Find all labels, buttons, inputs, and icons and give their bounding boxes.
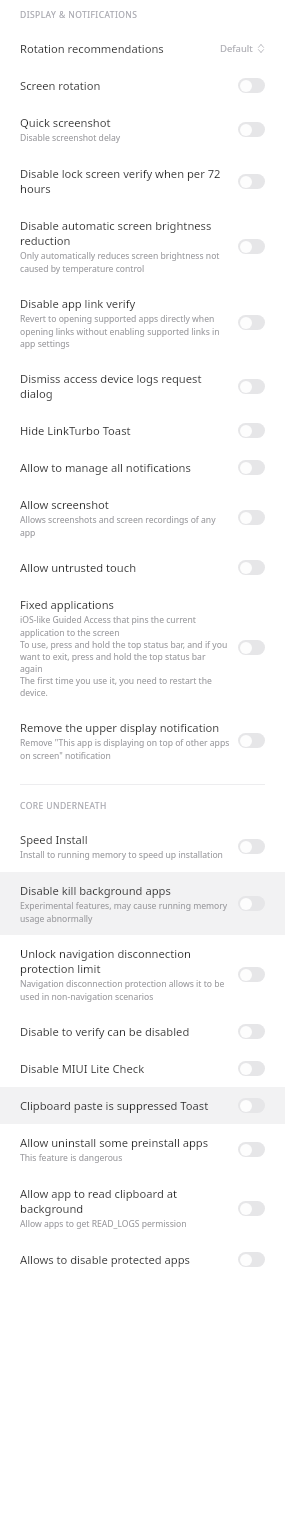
staticText: CORE UNDERNEATH — [20, 800, 107, 812]
button[interactable]: Screen rotation — [0, 67, 285, 104]
staticText: Fixed applications — [20, 597, 114, 612]
button[interactable]: Disable kill background apps — [0, 872, 285, 935]
staticText: Disable screenshot delay — [20, 132, 121, 144]
button[interactable]: Allow app to read clipboard at backgroun… — [0, 1175, 285, 1241]
staticText: iOS-like Guided Access that pins the cur… — [20, 614, 230, 698]
staticText: Allow untrusted touch — [20, 560, 137, 575]
staticText: Unlock navigation disconnection protecti… — [20, 946, 230, 976]
staticText: Rotation recommendations — [20, 41, 164, 56]
staticText: This feature is dangerous — [20, 1152, 123, 1164]
button[interactable]: Speed Install — [0, 821, 285, 872]
button[interactable]: Toggle — [238, 967, 265, 982]
button[interactable]: Rotation recommendations — [0, 30, 285, 67]
staticText: Install to running memory to speed up in… — [20, 849, 223, 861]
staticText: Revert to opening supported apps directl… — [20, 313, 230, 349]
button[interactable]: Toggle — [238, 239, 265, 254]
staticText: Screen rotation — [20, 78, 101, 93]
staticText: Disable kill background apps — [20, 883, 171, 898]
staticText: Default — [220, 42, 253, 55]
button[interactable]: Disable app link verify — [0, 285, 285, 360]
staticText: Allows screenshots and screen recordings… — [20, 514, 230, 538]
staticText: DISPLAY & NOTIFICATIONS — [20, 9, 138, 21]
staticText: Hide LinkTurbo Toast — [20, 423, 131, 438]
staticText: Allows to disable protected apps — [20, 1252, 190, 1267]
staticText: Allow screenshot — [20, 497, 109, 512]
staticText: Remove the upper display notification — [20, 720, 220, 735]
button[interactable]: Toggle — [238, 896, 265, 911]
button[interactable]: Toggle — [238, 1061, 265, 1076]
staticText: Speed Install — [20, 832, 88, 847]
staticText: Navigation disconnection protection allo… — [20, 978, 230, 1002]
button[interactable]: Toggle — [238, 1024, 265, 1039]
staticText: Disable to verify can be disabled — [20, 1024, 190, 1039]
button[interactable]: Toggle — [238, 1252, 265, 1267]
button[interactable]: Toggle — [238, 640, 265, 655]
button[interactable]: Disable automatic screen brightness redu… — [0, 207, 285, 285]
button[interactable]: Clipboard paste is suppressed Toast — [0, 1087, 285, 1124]
button[interactable]: Toggle — [238, 174, 265, 189]
button[interactable]: Toggle — [238, 379, 265, 394]
staticText: Allow app to read clipboard at backgroun… — [20, 1186, 230, 1216]
button[interactable]: Disable lock screen verify when per 72 h… — [0, 155, 285, 207]
button[interactable]: Allow to manage all notifications — [0, 449, 285, 486]
button[interactable]: Disable to verify can be disabled — [0, 1013, 285, 1050]
button[interactable]: Allow screenshot — [0, 486, 285, 549]
button[interactable]: Toggle — [238, 423, 265, 438]
button[interactable]: Hide LinkTurbo Toast — [0, 412, 285, 449]
button[interactable]: Dismiss access device logs request dialo… — [0, 360, 285, 412]
staticText: Disable app link verify — [20, 296, 136, 311]
staticText: Experimental features, may cause running… — [20, 900, 230, 924]
button[interactable]: Toggle — [238, 1098, 265, 1113]
staticText: Disable lock screen verify when per 72 h… — [20, 166, 230, 196]
staticText: Disable automatic screen brightness redu… — [20, 218, 230, 248]
staticText: Allow apps to get READ_LOGS permission — [20, 1218, 187, 1230]
staticText: Dismiss access device logs request dialo… — [20, 371, 230, 401]
button[interactable]: Allow untrusted touch — [0, 549, 285, 586]
button[interactable]: Toggle — [238, 78, 265, 93]
button[interactable]: Toggle — [238, 733, 265, 748]
button[interactable]: Toggle — [238, 1142, 265, 1157]
button[interactable]: Toggle — [238, 510, 265, 525]
staticText: Remove "This app is displaying on top of… — [20, 737, 230, 761]
staticText: Allow uninstall some preinstall apps — [20, 1135, 209, 1150]
staticText: Only automatically reduces screen bright… — [20, 250, 230, 274]
button[interactable]: Toggle — [238, 315, 265, 330]
button[interactable]: Remove the upper display notification — [0, 709, 285, 772]
staticText: Clipboard paste is suppressed Toast — [20, 1098, 209, 1113]
button[interactable]: Toggle — [238, 1201, 265, 1216]
button[interactable]: Disable MIUI Lite Check — [0, 1050, 285, 1087]
button[interactable]: Toggle — [238, 460, 265, 475]
staticText: Quick screenshot — [20, 115, 111, 130]
button[interactable]: Fixed applications — [0, 586, 285, 709]
button[interactable]: Unlock navigation disconnection protecti… — [0, 935, 285, 1013]
button[interactable]: Toggle — [238, 839, 265, 854]
button[interactable]: Allows to disable protected apps — [0, 1241, 285, 1278]
button[interactable]: Quick screenshot — [0, 104, 285, 155]
staticText: Disable MIUI Lite Check — [20, 1061, 145, 1076]
staticText: Allow to manage all notifications — [20, 460, 191, 475]
button[interactable]: Toggle — [238, 122, 265, 137]
button[interactable]: Allow uninstall some preinstall apps — [0, 1124, 285, 1175]
button[interactable]: Toggle — [238, 560, 265, 575]
